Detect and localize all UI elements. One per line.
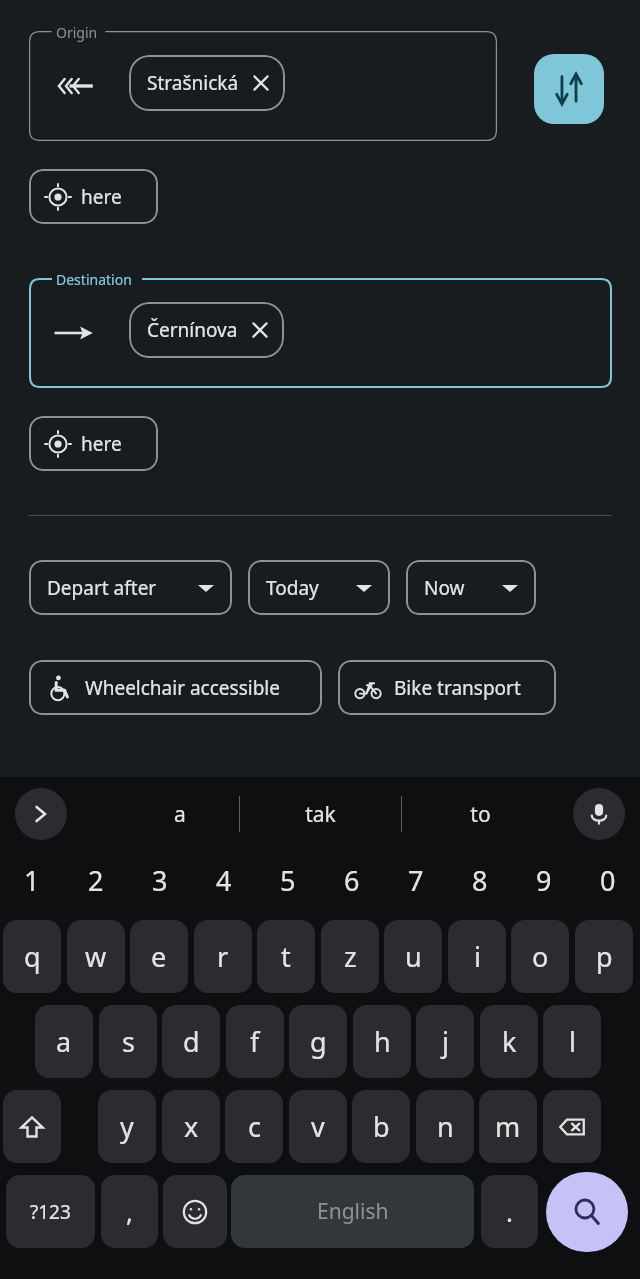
staticText: 7 [408,862,424,899]
button[interactable]: , [101,1175,158,1248]
staticText: c [248,1108,261,1145]
staticText: Strašnická [147,70,239,96]
button[interactable]: d [162,1005,220,1078]
staticText: English [317,1197,389,1226]
staticText: Destination [56,270,132,289]
staticText: o [532,938,549,975]
button[interactable]: c [225,1090,283,1163]
button[interactable]: 2 [64,855,128,905]
button[interactable]: Voice input [573,788,625,840]
button[interactable]: tak [255,788,385,840]
staticText: u [405,938,422,975]
button[interactable]: h [353,1005,411,1078]
button[interactable]: 8 [448,855,512,905]
button[interactable]: 5 [256,855,320,905]
staticText: l [569,1023,576,1060]
button[interactable]: Strašnická [129,55,285,111]
staticText: 8 [472,862,488,899]
button[interactable]: i [448,920,506,993]
staticText: Černínova [147,317,238,343]
button[interactable]: Swap origin and destination [534,54,604,124]
button[interactable]: b [352,1090,410,1163]
staticText: Today [266,575,319,601]
button[interactable]: t [257,920,315,993]
button[interactable]: w [67,920,125,993]
staticText: 3 [152,862,168,899]
button[interactable]: Now [406,560,536,615]
button[interactable]: p [575,920,633,993]
button[interactable]: Černínova [129,302,284,358]
button[interactable]: z [321,920,379,993]
staticText: Wheelchair accessible [85,675,280,701]
staticText: v [311,1108,325,1145]
staticText: , [126,1194,133,1229]
button[interactable]: . [481,1175,538,1248]
staticText: Depart after [47,575,157,601]
button[interactable]: l [543,1005,601,1078]
staticText: tak [305,800,336,829]
button[interactable]: ?123 [6,1175,95,1248]
staticText: here [81,431,122,457]
staticText: x [184,1108,199,1145]
button[interactable]: q [3,920,61,993]
staticText: z [344,938,357,975]
button[interactable]: n [416,1090,474,1163]
staticText: 9 [536,862,552,899]
staticText: Bike transport [394,675,521,701]
button[interactable]: r [194,920,252,993]
button[interactable]: 6 [320,855,384,905]
button[interactable]: y [98,1090,156,1163]
button[interactable]: Today [248,560,390,615]
staticText: t [281,938,291,975]
staticText: 1 [24,862,40,899]
staticText: Origin [56,23,98,42]
button[interactable]: e [130,920,188,993]
staticText: 5 [280,862,296,899]
button[interactable]: 4 [192,855,256,905]
button[interactable]: 7 [384,855,448,905]
button[interactable]: Depart after [29,560,232,615]
button[interactable]: Expand suggestions [15,788,67,840]
button[interactable]: to [420,788,540,840]
staticText: g [310,1023,327,1060]
button[interactable]: v [289,1090,347,1163]
button[interactable]: 3 [128,855,192,905]
button[interactable]: m [479,1090,537,1163]
button[interactable]: here [29,169,158,224]
staticText: q [24,938,41,975]
button[interactable]: o [511,920,569,993]
button[interactable]: a [100,788,260,840]
staticText: . [506,1194,513,1229]
staticText: 2 [88,862,104,899]
button[interactable]: Bike transport [338,660,556,715]
button[interactable]: k [480,1005,538,1078]
staticText: y [120,1108,134,1145]
staticText: i [474,938,481,975]
staticText: e [151,938,167,975]
button[interactable]: Shift [3,1090,61,1163]
button[interactable]: English [231,1175,474,1248]
button[interactable]: 9 [512,855,576,905]
button[interactable]: Emoji [163,1175,227,1248]
button[interactable]: 1 [0,855,64,905]
staticText: k [502,1023,517,1060]
button[interactable]: j [416,1005,474,1078]
staticText: b [373,1108,390,1145]
button[interactable]: here [29,416,158,471]
staticText: Now [424,575,465,601]
button[interactable]: f [226,1005,284,1078]
button[interactable]: Backspace [543,1090,601,1163]
button[interactable]: Wheelchair accessible [29,660,322,715]
button[interactable]: g [289,1005,347,1078]
button[interactable]: u [384,920,442,993]
button[interactable]: x [162,1090,220,1163]
staticText: 0 [600,862,616,899]
staticText: a [174,800,186,829]
staticText: j [442,1023,449,1060]
staticText: f [250,1023,260,1060]
button[interactable]: Search [546,1172,628,1252]
button[interactable]: s [99,1005,157,1078]
button[interactable]: a [35,1005,93,1078]
button[interactable]: 0 [576,855,640,905]
staticText: r [217,938,229,975]
